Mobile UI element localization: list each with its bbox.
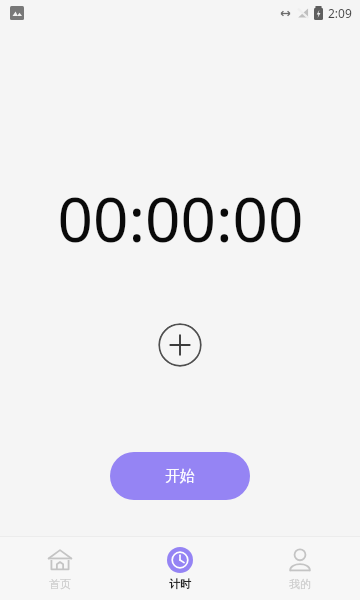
staticText: 开始 — [165, 467, 195, 486]
staticText: 首页 — [49, 577, 71, 591]
staticText: 2:09 — [328, 5, 352, 21]
button[interactable]: 计时 — [120, 537, 240, 600]
staticText: 我的 — [289, 577, 311, 591]
staticText: 计时 — [169, 577, 191, 591]
button[interactable]: Add lap — [158, 323, 202, 367]
button[interactable]: 我的 — [240, 537, 360, 600]
staticText: 00:00:00 — [57, 176, 304, 260]
button[interactable]: 开始 — [110, 452, 250, 500]
button[interactable]: 首页 — [0, 537, 120, 600]
